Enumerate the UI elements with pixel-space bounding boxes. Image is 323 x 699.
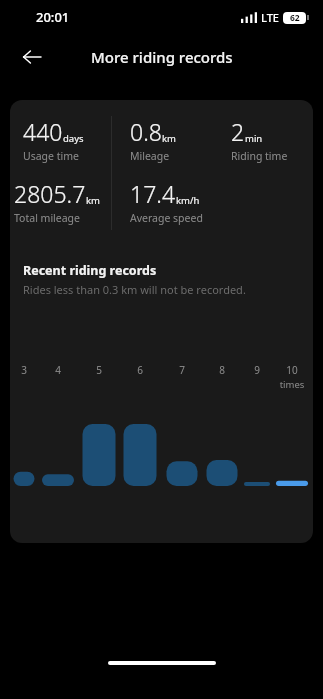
staticText: 5 xyxy=(85,363,113,377)
staticText: Average speed xyxy=(130,211,203,225)
staticText: 9 xyxy=(243,363,271,377)
staticText: LTE xyxy=(261,10,279,25)
staticText: 62 xyxy=(290,12,300,24)
staticText: Usage time xyxy=(23,149,79,163)
staticText: 4 xyxy=(44,363,72,377)
staticText: 440 xyxy=(23,116,63,147)
staticText: Total mileage xyxy=(14,211,81,225)
staticText: 6 xyxy=(126,363,154,377)
button[interactable]: Back xyxy=(10,35,54,79)
staticText: 8 xyxy=(208,363,236,377)
staticText: 0.8 xyxy=(130,116,162,147)
staticText: Mileage xyxy=(130,149,170,163)
staticText: More riding records xyxy=(91,47,233,67)
staticText: Rides less than 0.3 km will not be recor… xyxy=(23,282,246,297)
staticText: Recent riding records xyxy=(23,262,157,279)
staticText: Riding time xyxy=(231,149,288,163)
staticText: km xyxy=(86,194,100,207)
staticText: 7 xyxy=(168,363,196,377)
staticText: 10 xyxy=(278,363,306,377)
staticText: 3 xyxy=(10,363,38,377)
staticText: km/h xyxy=(176,194,200,207)
staticText: 2805.7 xyxy=(14,178,86,209)
staticText: min xyxy=(245,132,263,145)
staticText: 2 xyxy=(231,116,245,147)
staticText: 20:01 xyxy=(36,8,70,26)
staticText: times xyxy=(274,378,310,391)
staticText: 17.4 xyxy=(130,178,176,209)
staticText: km xyxy=(162,132,176,145)
staticText: days xyxy=(63,132,84,145)
